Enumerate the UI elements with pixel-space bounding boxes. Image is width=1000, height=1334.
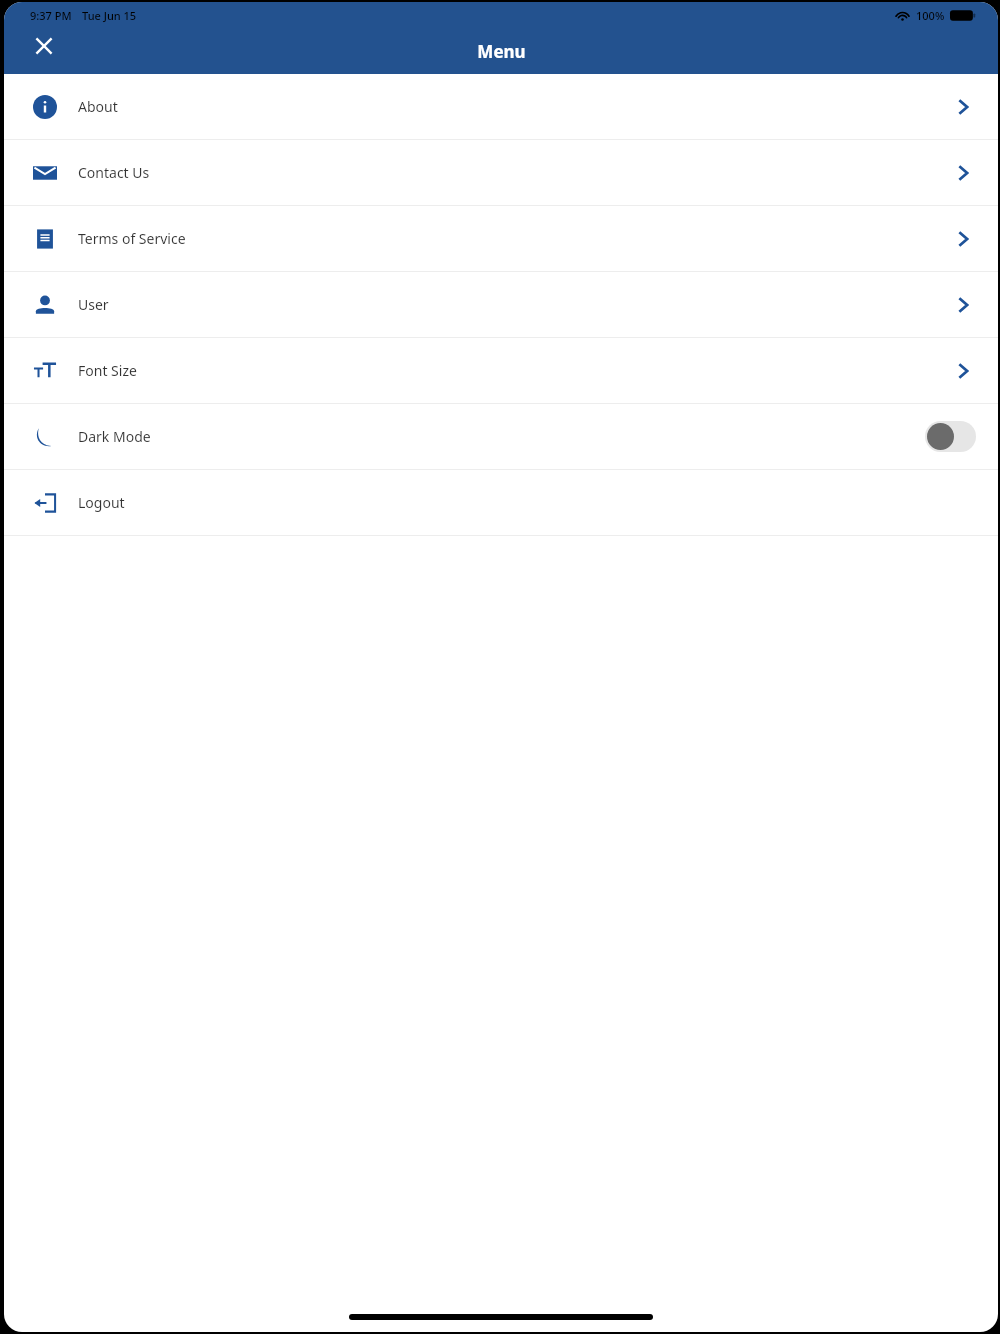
button[interactable]: Dark Mode — [4, 404, 998, 470]
staticText: Dark Mode — [78, 427, 151, 446]
button[interactable]: Close — [22, 24, 66, 68]
staticText: Logout — [78, 493, 125, 512]
button[interactable]: Font Size — [4, 338, 998, 404]
button[interactable]: Dark Mode toggle — [925, 421, 976, 452]
button[interactable]: Terms of Service — [4, 206, 998, 272]
staticText: Terms of Service — [78, 229, 186, 248]
staticText: User — [78, 295, 109, 314]
staticText: About — [78, 97, 118, 116]
button[interactable]: Contact Us — [4, 140, 998, 206]
button[interactable]: Logout — [4, 470, 998, 536]
staticText: Menu — [477, 40, 526, 63]
button[interactable]: About — [4, 74, 998, 140]
staticText: 100% — [916, 8, 945, 23]
staticText: 9:37 PM — [30, 8, 72, 23]
button[interactable]: User — [4, 272, 998, 338]
staticText: Contact Us — [78, 163, 150, 182]
staticText: Tue Jun 15 — [82, 8, 137, 23]
staticText: Font Size — [78, 361, 137, 380]
